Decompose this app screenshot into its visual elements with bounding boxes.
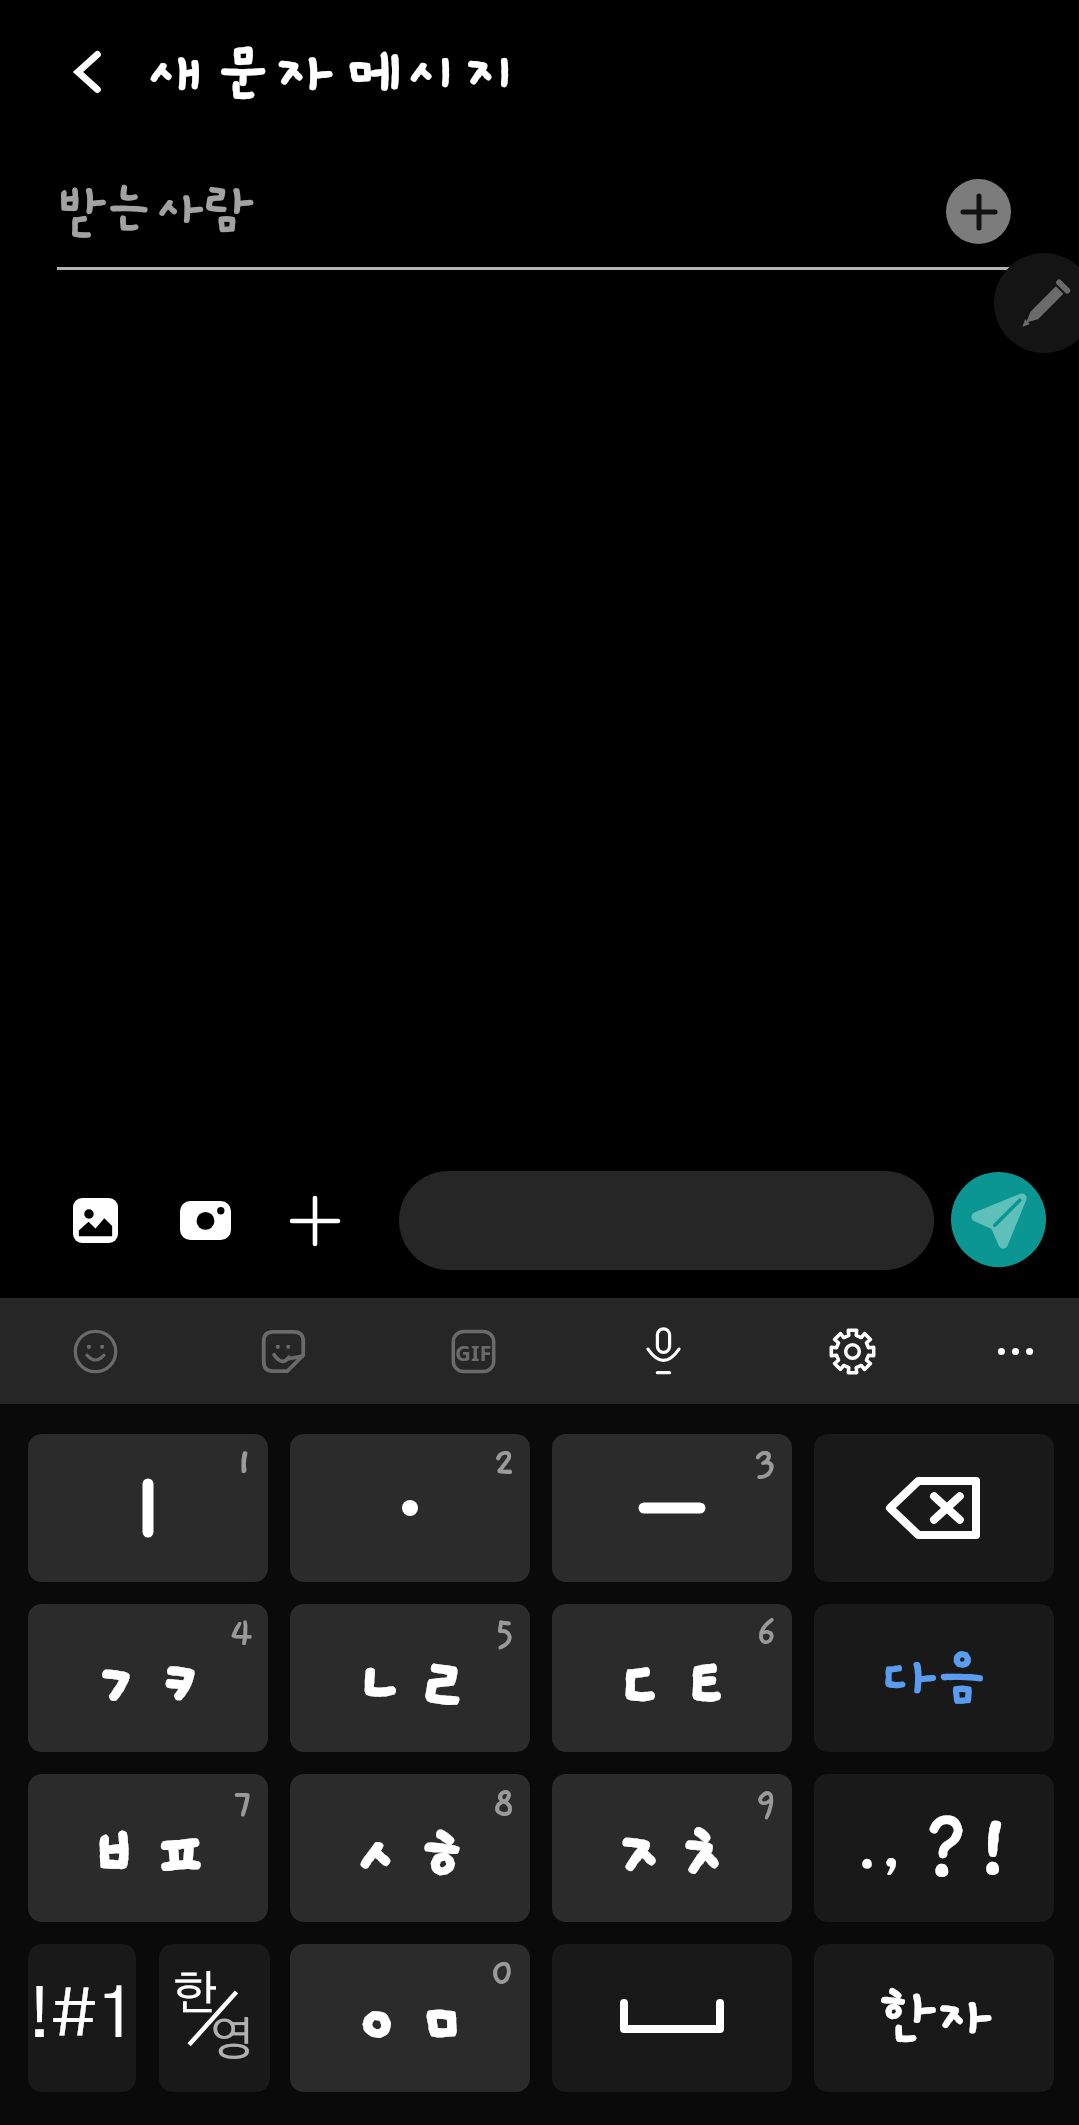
button[interactable]: More options (272, 1178, 357, 1263)
button[interactable]: Stickers (231, 1299, 335, 1403)
button[interactable]: Next (814, 1604, 1054, 1752)
button[interactable]: More (963, 1299, 1067, 1403)
staticText: ㅇㅁ (335, 1974, 467, 2074)
button[interactable]: 3 (552, 1434, 792, 1582)
button[interactable]: Backspace (814, 1434, 1054, 1582)
staticText: 새 (146, 41, 205, 112)
button[interactable]: Punctuation (814, 1774, 1054, 1922)
staticText: 3 (754, 1442, 778, 1486)
button[interactable]: 1 (28, 1434, 268, 1582)
button[interactable]: 한 (159, 1944, 270, 2092)
staticText: 4 (229, 1612, 254, 1656)
staticText: ㅂㅍ (73, 1804, 205, 1904)
staticText: 6 (756, 1612, 778, 1656)
button[interactable]: Settings (800, 1299, 904, 1403)
staticText: ㄷㅌ (597, 1634, 729, 1734)
staticText: ㅅㅎ (335, 1804, 467, 1904)
staticText: 한자 (878, 1986, 990, 2054)
button[interactable]: ㄴㄹ (290, 1604, 530, 1752)
button[interactable]: ㅈㅊ (552, 1774, 792, 1922)
button[interactable]: GIF (421, 1299, 525, 1403)
button[interactable]: Voice input (611, 1299, 715, 1403)
button[interactable]: Space (552, 1944, 792, 2092)
button[interactable]: ㅅㅎ (290, 1774, 530, 1922)
staticText: 다음 (878, 1646, 990, 1714)
button[interactable]: 2 (290, 1434, 530, 1582)
staticText: ㄴㄹ (335, 1634, 467, 1734)
staticText: 영 (209, 2018, 255, 2065)
staticText: 5 (494, 1612, 516, 1656)
staticText: 0 (490, 1952, 516, 1996)
button[interactable]: Back (48, 30, 132, 114)
button[interactable]: Emoji (43, 1299, 147, 1403)
staticText: !#1 (29, 1982, 136, 2050)
staticText: ?! (920, 1801, 1015, 1897)
staticText: 1 (235, 1442, 254, 1486)
button[interactable]: Camera (163, 1178, 248, 1263)
staticText: 9 (755, 1782, 778, 1826)
staticText: 2 (493, 1442, 516, 1486)
button[interactable]: ㄱㅋ (28, 1604, 268, 1752)
staticText: 받는사람 (55, 181, 252, 241)
button[interactable]: ㄷㅌ (552, 1604, 792, 1752)
staticText: 한 (173, 1972, 219, 2019)
staticText: ㅈㅊ (597, 1804, 729, 1904)
staticText: 문자 (214, 41, 331, 112)
button[interactable]: Hanja (814, 1944, 1054, 2092)
button[interactable]: ㅇㅁ (290, 1944, 530, 2092)
staticText: 메시지 (345, 41, 520, 112)
button[interactable]: Handwriting (994, 253, 1079, 353)
staticText: 8 (492, 1782, 516, 1826)
button[interactable]: Add recipient (946, 179, 1011, 244)
button[interactable] (399, 1171, 934, 1270)
button[interactable]: !#1 (28, 1944, 136, 2092)
button[interactable]: Gallery (53, 1178, 138, 1263)
staticText: ., (855, 1815, 904, 1885)
staticText: 7 (233, 1782, 254, 1826)
staticText: GIF (455, 1337, 492, 1367)
staticText: ㄱㅋ (73, 1634, 205, 1734)
button[interactable]: Send (951, 1172, 1046, 1267)
button[interactable]: ㅂㅍ (28, 1774, 268, 1922)
